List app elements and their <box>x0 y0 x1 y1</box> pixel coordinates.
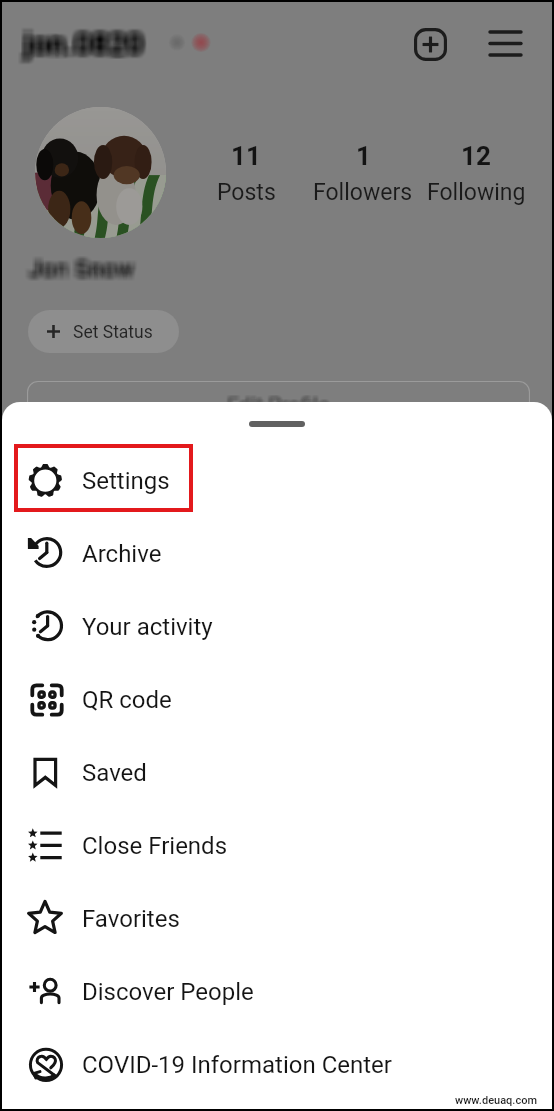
staticText: Jon Snow <box>30 255 136 283</box>
staticText: jon.0820 <box>28 31 148 66</box>
staticText: jon.0820 <box>19 27 139 62</box>
button[interactable]: Set Status <box>28 310 179 353</box>
button[interactable]: Profile photo <box>35 107 166 238</box>
staticText: Jon Snow <box>31 253 137 281</box>
staticText: jon.0820 <box>26 26 146 61</box>
staticText: Jon Snow <box>24 253 130 281</box>
staticText: Jon Snow <box>29 258 135 286</box>
staticText: Edit Profile <box>226 395 329 420</box>
staticText: Jon Snow <box>28 258 134 286</box>
staticText: Jon Snow <box>31 251 137 279</box>
staticText: jon.0820 <box>25 27 145 62</box>
staticText: Followers <box>313 179 413 206</box>
staticText: jon.0820 <box>20 21 140 56</box>
button[interactable]: Discover People <box>2 955 552 1028</box>
button[interactable]: New post <box>408 22 453 67</box>
staticText: Edit Profile <box>228 395 331 420</box>
staticText: jon.0820 <box>29 22 149 57</box>
button[interactable]: Your activity <box>2 590 552 663</box>
staticText: jon.0820 <box>25 28 145 63</box>
staticText: Jon Snow <box>32 257 138 285</box>
staticText: jon.0820 <box>19 23 139 58</box>
staticText: jon.0820 <box>19 22 139 57</box>
staticText: jon.0820 <box>26 23 146 58</box>
staticText: jon.0820 <box>28 23 148 58</box>
staticText: jon.0820 <box>20 30 140 65</box>
staticText: jon.0820 <box>23 24 143 59</box>
staticText: Following <box>427 179 526 206</box>
staticText: jon.0820 <box>23 30 143 65</box>
staticText: Jon Snow <box>24 257 130 285</box>
staticText: jon.0820 <box>22 30 142 65</box>
staticText: jon.0820 <box>20 28 140 63</box>
staticText: jon.0820 <box>23 25 143 60</box>
staticText: jon.0820 <box>25 24 145 59</box>
staticText: jon.0820 <box>27 22 147 57</box>
staticText: jon.0820 <box>22 22 142 57</box>
staticText: jon.0820 <box>26 29 146 64</box>
staticText: Your activity <box>82 613 213 641</box>
staticText: Jon Snow <box>29 252 135 280</box>
staticText: Jon Snow <box>25 251 131 279</box>
staticText: jon.0820 <box>22 25 142 60</box>
staticText: Jon Snow <box>26 254 132 282</box>
button[interactable]: COVID-19 Information Center <box>2 1028 552 1101</box>
staticText: Saved <box>82 759 147 787</box>
staticText: Jon Snow <box>30 257 136 285</box>
staticText: Jon Snow <box>26 256 132 284</box>
staticText: jon.0820 <box>23 22 143 57</box>
staticText: jon.0820 <box>27 31 147 66</box>
staticText: Edit Profile <box>228 394 331 419</box>
staticText: 12 <box>461 141 491 171</box>
staticText: Jon Snow <box>30 258 136 286</box>
staticText: jon.0820 <box>20 29 140 64</box>
staticText: Edit Profile <box>228 391 331 416</box>
staticText: jon.0820 <box>23 28 143 63</box>
staticText: jon.0820 <box>19 30 139 65</box>
staticText: Edit Profile <box>225 392 328 417</box>
staticText: COVID-19 Information Center <box>82 1051 392 1079</box>
staticText: jon.0820 <box>27 30 147 65</box>
staticText: jon.0820 <box>22 21 142 56</box>
staticText: Jon Snow <box>29 259 135 287</box>
staticText: jon.0820 <box>20 23 140 58</box>
staticText: jon.0820 <box>25 29 145 64</box>
staticText: jon.0820 <box>21 30 141 65</box>
staticText: Edit Profile <box>227 394 330 419</box>
staticText: Jon Snow <box>32 259 138 287</box>
staticText: jon.0820 <box>23 27 143 62</box>
staticText: Favorites <box>82 905 180 933</box>
staticText: jon.0820 <box>28 27 148 62</box>
staticText: jon.0820 <box>29 24 149 59</box>
button[interactable]: Edit Profile <box>27 381 530 429</box>
button[interactable]: Saved <box>2 736 552 809</box>
staticText: jon.0820 <box>26 30 146 65</box>
button[interactable]: Favorites <box>2 882 552 955</box>
button[interactable]: Settings <box>2 444 552 517</box>
staticText: Jon Snow <box>32 258 138 286</box>
staticText: Jon Snow <box>29 256 135 284</box>
staticText: Edit Profile <box>226 394 329 419</box>
staticText: jon.0820 <box>21 27 141 62</box>
staticText: Jon Snow <box>28 255 134 283</box>
button[interactable]: Close Friends <box>2 809 552 882</box>
button[interactable]: Menu <box>483 21 528 66</box>
staticText: Edit Profile <box>225 394 328 419</box>
staticText: jon.0820 <box>21 23 141 58</box>
staticText: Jon Snow <box>24 255 130 283</box>
staticText: Jon Snow <box>31 259 137 287</box>
staticText: Edit Profile <box>229 392 332 417</box>
staticText: jon.0820 <box>22 31 142 66</box>
staticText: Jon Snow <box>24 251 130 279</box>
staticText: jon.0820 <box>28 25 148 60</box>
staticText: Jon Snow <box>28 251 134 279</box>
staticText: jon.0820 <box>21 25 141 60</box>
staticText: Close Friends <box>82 832 228 860</box>
staticText: jon.0820 <box>25 22 145 57</box>
staticText: jon.0820 <box>20 27 140 62</box>
staticText: jon.0820 <box>27 29 147 64</box>
staticText: jon.0820 <box>19 29 139 64</box>
button[interactable]: QR code <box>2 663 552 736</box>
staticText: Edit Profile <box>226 393 329 418</box>
button[interactable]: Archive <box>2 517 552 590</box>
